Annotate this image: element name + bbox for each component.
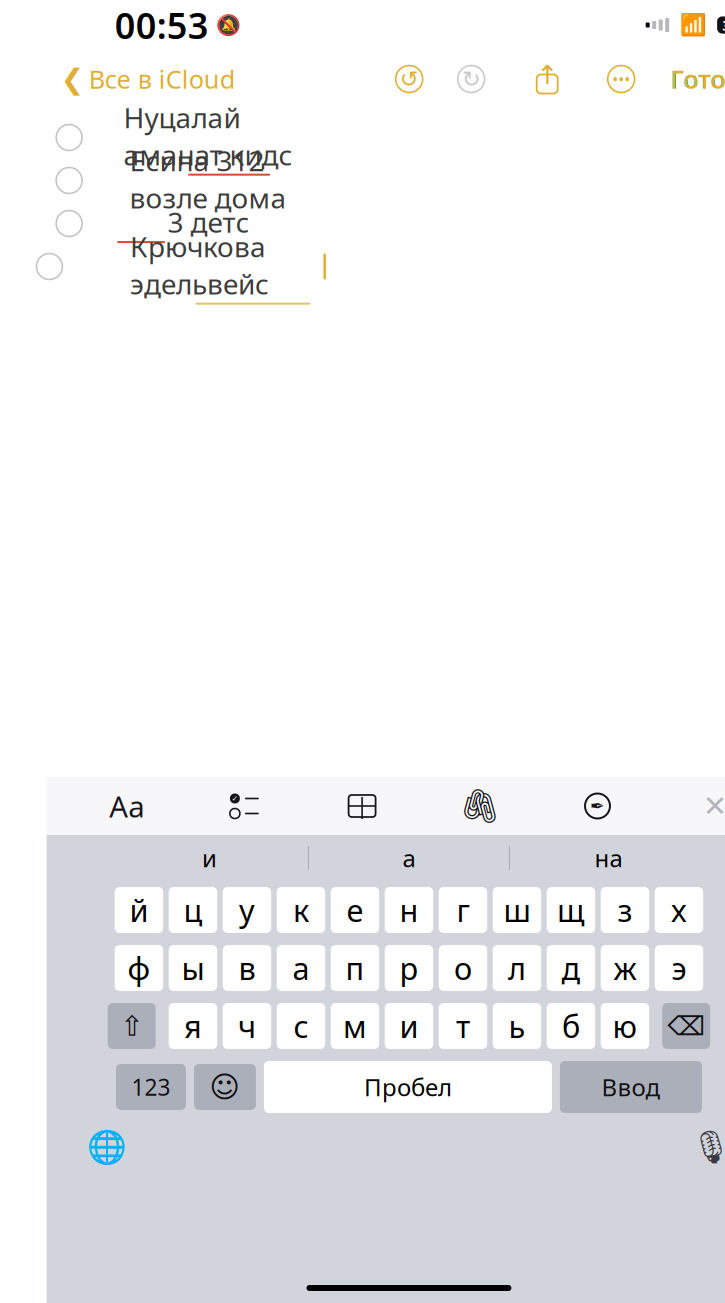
staticText: Aa: [109, 786, 144, 825]
button[interactable]: э: [655, 945, 703, 991]
button[interactable]: х: [655, 887, 703, 933]
button[interactable]: ф: [115, 945, 163, 991]
button[interactable]: ю: [601, 1003, 649, 1049]
staticText: 123: [131, 1072, 170, 1102]
staticText: на: [594, 842, 622, 874]
button[interactable]: к: [277, 887, 325, 933]
staticText: 🔕: [216, 14, 241, 36]
staticText: 🖇: [459, 787, 501, 825]
button[interactable]: Checklist: [222, 784, 266, 828]
button[interactable]: в: [223, 945, 271, 991]
button[interactable]: Share: [530, 63, 564, 95]
button[interactable]: Format: [105, 784, 149, 828]
button[interactable]: г: [439, 887, 487, 933]
button[interactable]: й: [115, 887, 163, 933]
button[interactable]: и: [111, 835, 308, 881]
staticText: 🎙: [691, 1129, 725, 1165]
button[interactable]: ❮: [61, 56, 236, 102]
staticText: Крючкова эдельвейс: [130, 228, 269, 302]
button[interactable]: ь: [493, 1003, 541, 1049]
button[interactable]: с: [277, 1003, 325, 1049]
staticText: ⌫: [667, 1011, 705, 1041]
staticText: Все в iCloud: [89, 62, 236, 96]
staticText: э: [671, 948, 686, 988]
staticText: у: [239, 890, 255, 930]
staticText: 3 детc: [167, 203, 248, 241]
button[interactable]: б: [547, 1003, 595, 1049]
staticText: ✓: [231, 794, 238, 803]
staticText: ☺: [209, 1070, 240, 1104]
button[interactable]: а: [309, 835, 509, 881]
button[interactable]: More: [606, 64, 636, 94]
button[interactable]: Backspace: [662, 1003, 710, 1049]
staticText: в: [238, 948, 255, 988]
staticText: д: [561, 948, 580, 988]
button[interactable]: Redo: [456, 64, 486, 94]
staticText: р: [399, 948, 418, 988]
button[interactable]: Shift: [108, 1003, 156, 1049]
button[interactable]: ж: [601, 945, 649, 991]
button[interactable]: д: [547, 945, 595, 991]
button[interactable]: Switch keyboard: [85, 1125, 129, 1169]
button[interactable]: Undo: [394, 64, 424, 94]
staticText: ы: [181, 948, 204, 988]
button[interactable]: Table: [340, 784, 384, 828]
button[interactable]: у: [223, 887, 271, 933]
staticText: о: [454, 948, 472, 988]
staticText: Готово: [670, 62, 725, 96]
staticText: 00:53: [115, 1, 209, 49]
staticText: щ: [557, 890, 585, 930]
staticText: л: [508, 948, 526, 988]
staticText: 30: [722, 15, 725, 35]
button[interactable]: з: [601, 887, 649, 933]
button[interactable]: п: [331, 945, 379, 991]
staticText: м: [343, 1006, 367, 1046]
staticText: ↑: [536, 60, 558, 90]
staticText: з: [617, 890, 632, 930]
staticText: а: [292, 948, 309, 988]
staticText: ф: [127, 948, 150, 988]
button[interactable]: ц: [169, 887, 217, 933]
button[interactable]: Пробел: [264, 1061, 552, 1113]
button[interactable]: м: [331, 1003, 379, 1049]
staticText: б: [562, 1006, 580, 1046]
staticText: а: [402, 842, 415, 874]
button[interactable]: Attach: [458, 784, 502, 828]
button[interactable]: и: [385, 1003, 433, 1049]
button[interactable]: н: [385, 887, 433, 933]
button[interactable]: т: [439, 1003, 487, 1049]
staticText: Ввод: [601, 1071, 660, 1103]
button[interactable]: щ: [547, 887, 595, 933]
button[interactable]: л: [493, 945, 541, 991]
staticText: ь: [508, 1006, 525, 1046]
staticText: 📶: [680, 13, 707, 37]
staticText: х: [671, 890, 687, 930]
button[interactable]: о: [439, 945, 487, 991]
button[interactable]: на: [510, 835, 707, 881]
button[interactable]: Emoji: [194, 1064, 256, 1110]
button[interactable]: я: [169, 1003, 217, 1049]
button[interactable]: Markup: [575, 784, 619, 828]
staticText: ч: [238, 1006, 256, 1046]
button[interactable]: ч: [223, 1003, 271, 1049]
staticText: ж: [613, 948, 636, 988]
button[interactable]: Numbers: [116, 1064, 186, 1110]
staticText: к: [293, 890, 309, 930]
button[interactable]: ш: [493, 887, 541, 933]
button[interactable]: ы: [169, 945, 217, 991]
staticText: й: [129, 890, 148, 930]
staticText: ш: [503, 890, 530, 930]
staticText: Нуцалай аманат кидс: [123, 99, 292, 173]
button[interactable]: р: [385, 945, 433, 991]
button[interactable]: Готово: [670, 56, 725, 102]
button[interactable]: Ввод: [560, 1061, 702, 1113]
staticText: ю: [612, 1006, 637, 1046]
button[interactable]: а: [277, 945, 325, 991]
staticText: •••: [612, 68, 630, 90]
button[interactable]: Dictate: [689, 1125, 725, 1169]
staticText: ✒: [590, 796, 605, 816]
staticText: и: [202, 842, 217, 874]
staticText: ц: [183, 890, 202, 930]
button[interactable]: е: [331, 887, 379, 933]
button[interactable]: Close keyboard: [693, 784, 725, 828]
